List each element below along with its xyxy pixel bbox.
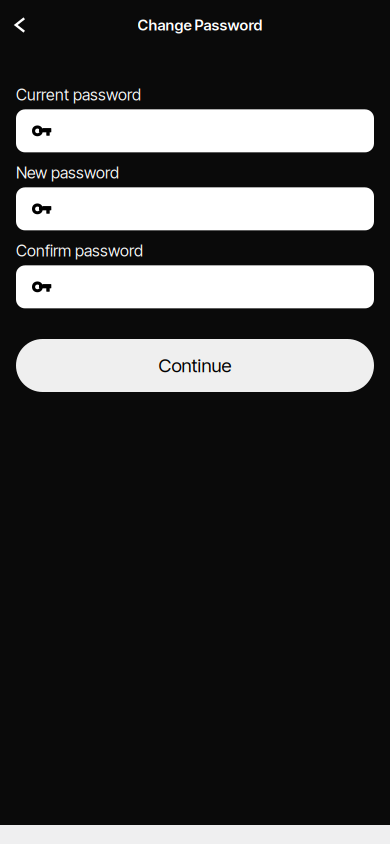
- button[interactable]: [16, 265, 374, 308]
- staticText: Change Password: [137, 16, 262, 34]
- button[interactable]: Back: [1, 6, 39, 44]
- button[interactable]: [16, 109, 374, 152]
- button[interactable]: [16, 187, 374, 230]
- staticText: Continue: [158, 354, 231, 377]
- staticText: Confirm password: [16, 241, 143, 260]
- button[interactable]: Continue: [16, 339, 374, 392]
- staticText: Current password: [16, 85, 141, 104]
- staticText: New password: [16, 163, 119, 182]
